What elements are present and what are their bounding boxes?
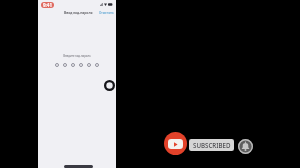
staticText: 9:41: [43, 2, 52, 8]
button[interactable]: Отменить: [99, 11, 114, 15]
staticText: SUBSCRIBED: [193, 141, 231, 149]
button[interactable]: YouTube channel: [164, 132, 187, 155]
button[interactable]: Notifications: [238, 139, 253, 154]
button[interactable]: Ввод код-пароля: [64, 10, 93, 15]
button[interactable]: SUBSCRIBED: [189, 139, 234, 151]
staticText: Отменить: [99, 11, 114, 15]
staticText: Введите код-пароль: [63, 54, 91, 58]
staticText: Ввод код-пароля: [64, 10, 93, 15]
